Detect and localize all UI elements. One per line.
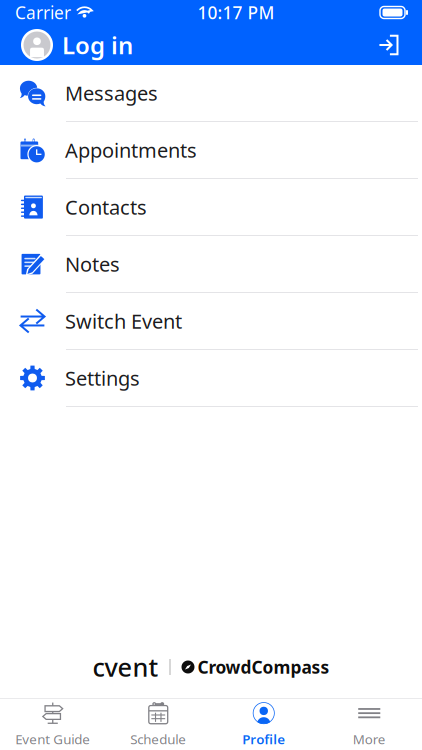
staticText: Event Guide bbox=[15, 730, 90, 748]
button[interactable]: More bbox=[316, 700, 422, 748]
staticText: Schedule bbox=[130, 730, 186, 748]
button[interactable]: Appointments bbox=[0, 122, 422, 179]
staticText: Carrier bbox=[15, 1, 71, 24]
staticText: Settings bbox=[65, 365, 140, 391]
staticText: Log in bbox=[62, 29, 133, 61]
staticText: Switch Event bbox=[65, 308, 182, 334]
button[interactable]: Log in bbox=[21, 29, 133, 61]
button[interactable]: Sign in bbox=[370, 25, 409, 64]
button[interactable]: Switch Event bbox=[0, 293, 422, 350]
button[interactable]: Schedule bbox=[105, 700, 211, 748]
staticText: CrowdCompass bbox=[197, 655, 329, 678]
button[interactable]: Profile bbox=[211, 700, 316, 748]
button[interactable]: Contacts bbox=[0, 179, 422, 236]
staticText: 10:17 PM bbox=[197, 1, 274, 24]
staticText: Contacts bbox=[65, 194, 147, 220]
button[interactable]: Messages bbox=[0, 65, 422, 122]
staticText: Appointments bbox=[65, 137, 197, 163]
staticText: More bbox=[353, 730, 386, 748]
staticText: Profile bbox=[242, 730, 285, 748]
staticText: cvent bbox=[92, 650, 158, 684]
button[interactable]: Event Guide bbox=[0, 700, 105, 748]
staticText: Messages bbox=[65, 80, 158, 106]
staticText: Notes bbox=[65, 251, 120, 277]
button[interactable]: Notes bbox=[0, 236, 422, 293]
button[interactable]: Settings bbox=[0, 350, 422, 407]
